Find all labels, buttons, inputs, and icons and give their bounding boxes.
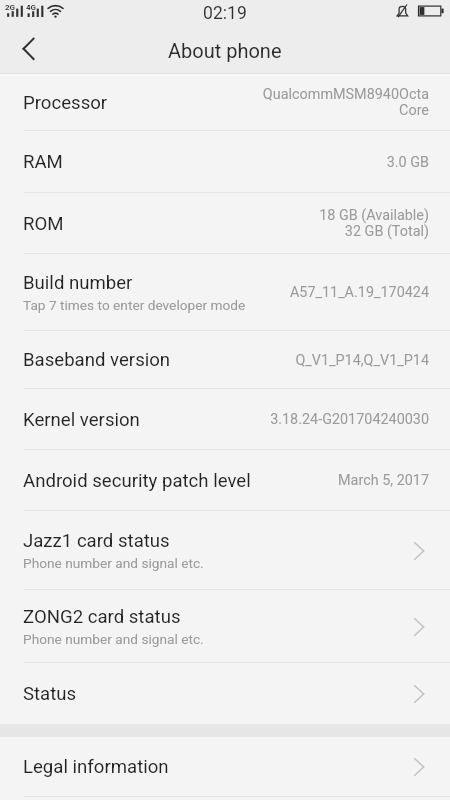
staticText: About phone xyxy=(168,39,282,62)
button[interactable]: Build number xyxy=(0,254,450,331)
button[interactable]: RAM xyxy=(0,131,450,193)
staticText: 02:19 xyxy=(203,3,247,24)
staticText: 18 GB (Available) 32 GB (Total) xyxy=(319,207,429,240)
staticText: QualcommMSM8940Octa Core xyxy=(262,86,429,119)
staticText: RAM xyxy=(23,151,63,173)
staticText: Processor xyxy=(23,92,108,114)
staticText: 3.18.24-G201704240030 xyxy=(270,411,429,428)
staticText: Phone number and signal etc. xyxy=(23,631,204,647)
staticText: Legal information xyxy=(23,756,169,778)
staticText: Build number xyxy=(23,272,133,294)
staticText: Android security patch level xyxy=(23,470,251,492)
staticText: 3.0 GB xyxy=(386,154,429,171)
staticText: Baseband version xyxy=(23,349,171,371)
button[interactable]: Back xyxy=(0,26,57,74)
staticText: Jazz1 card status xyxy=(23,530,170,552)
button[interactable]: ROM xyxy=(0,193,450,254)
button[interactable]: Baseband version xyxy=(0,331,450,389)
button[interactable]: Status xyxy=(0,663,450,724)
button[interactable]: Android security patch level xyxy=(0,450,450,511)
staticText: 4G xyxy=(26,3,37,12)
staticText: ZONG2 card status xyxy=(23,606,181,628)
staticText: ROM xyxy=(23,213,64,235)
staticText: A57_11_A.19_170424 xyxy=(289,284,429,301)
button[interactable]: Kernel version xyxy=(0,389,450,450)
staticText: March 5, 2017 xyxy=(337,472,429,489)
staticText: Q_V1_P14,Q_V1_P14 xyxy=(295,352,429,369)
button[interactable]: ZONG2 card status xyxy=(0,590,450,663)
staticText: Kernel version xyxy=(23,409,140,431)
button[interactable]: Processor xyxy=(0,74,450,131)
staticText: 2G xyxy=(5,3,16,12)
button[interactable]: Jazz1 card status xyxy=(0,511,450,590)
staticText: Phone number and signal etc. xyxy=(23,555,204,571)
staticText: Tap 7 times to enter developer mode xyxy=(23,297,246,313)
staticText: Status xyxy=(23,683,77,705)
button[interactable]: Legal information xyxy=(0,737,450,797)
